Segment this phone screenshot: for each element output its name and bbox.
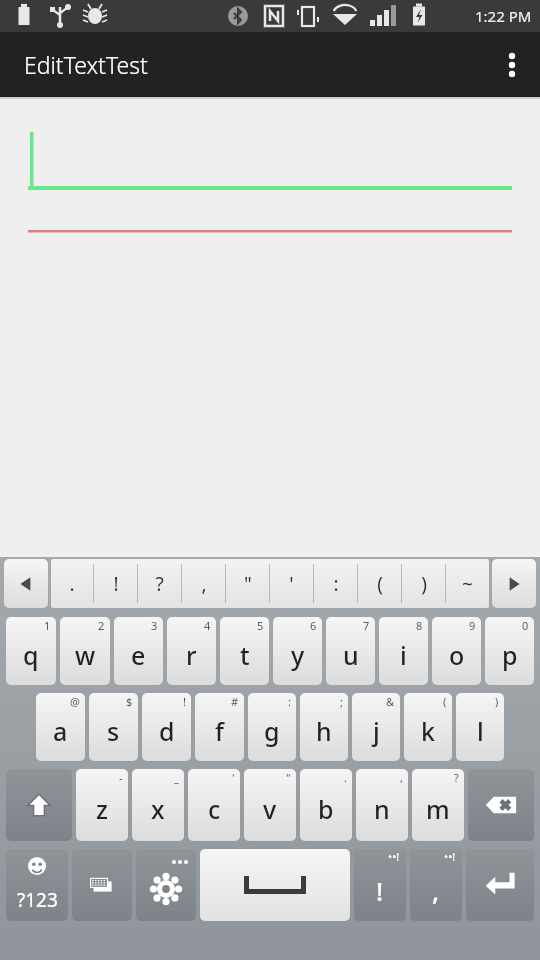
button[interactable]: 9 (432, 617, 481, 685)
staticText: 1:22 PM (475, 6, 532, 26)
staticText: y (291, 638, 305, 672)
staticText: ! (113, 571, 119, 597)
button[interactable]: 8 (379, 617, 428, 685)
staticText: e (131, 638, 146, 672)
staticText: l (477, 714, 484, 748)
staticText: ; (340, 694, 343, 709)
button[interactable]: ) (456, 693, 504, 761)
button[interactable]: 5 (220, 617, 269, 685)
staticText: , (432, 873, 440, 908)
button[interactable]: : (248, 693, 296, 761)
staticText: : (333, 571, 339, 597)
staticText: ! (183, 694, 186, 709)
button[interactable]: 6 (273, 617, 322, 685)
staticText: t (240, 638, 250, 672)
staticText: - (119, 770, 123, 785)
button[interactable]: Next (492, 559, 536, 608)
button[interactable]: Switch keyboard (72, 849, 132, 921)
button[interactable]: # (195, 693, 244, 761)
staticText: ) (421, 571, 427, 597)
button[interactable]: Space (200, 849, 350, 921)
staticText: 7 (363, 618, 370, 633)
staticText: o (449, 638, 465, 672)
staticText: ( (443, 694, 447, 709)
staticText: _ (174, 770, 179, 785)
staticText: 6 (310, 618, 317, 633)
staticText: . (344, 770, 347, 785)
staticText: p (502, 638, 518, 672)
staticText: ! (376, 873, 384, 908)
button[interactable]: 7 (326, 617, 375, 685)
button[interactable]: More options (484, 32, 540, 97)
button[interactable]: _ (132, 769, 184, 841)
button[interactable]: - (76, 769, 128, 841)
button[interactable]: 4 (167, 617, 216, 685)
button[interactable]: , (182, 559, 225, 608)
staticText: @ (70, 694, 80, 709)
button[interactable]: @ (36, 693, 85, 761)
staticText: ? (155, 571, 164, 597)
button[interactable]: " (244, 769, 296, 841)
staticText: c (208, 792, 221, 826)
button[interactable]: 2 (60, 617, 110, 685)
button[interactable]: 3 (114, 617, 163, 685)
button[interactable]: ? (138, 559, 181, 608)
button[interactable]: 1 (6, 617, 56, 685)
button[interactable]: Previous (4, 559, 48, 608)
staticText: r (186, 638, 197, 672)
button[interactable]: ? (412, 769, 464, 841)
staticText: n (374, 792, 390, 826)
staticText: x (151, 792, 165, 826)
button[interactable]: Backspace (468, 769, 534, 841)
staticText: 8 (416, 618, 423, 633)
button[interactable]: ' (188, 769, 240, 841)
button[interactable]: . (300, 769, 352, 841)
button[interactable]: . (51, 559, 93, 608)
staticText: 1 (44, 618, 51, 633)
staticText: z (96, 792, 108, 826)
staticText: b (318, 792, 334, 826)
staticText: ' (289, 571, 294, 597)
button[interactable]: ' (270, 559, 313, 608)
staticText: ( (377, 571, 383, 597)
button[interactable]: Enter (466, 849, 534, 921)
button[interactable]: ! (94, 559, 137, 608)
staticText: s (107, 714, 120, 748)
button[interactable]: ) (402, 559, 445, 608)
staticText: : (288, 694, 291, 709)
button[interactable]: Shift (6, 769, 72, 841)
button[interactable]: : (314, 559, 357, 608)
button[interactable]: Settings (136, 849, 196, 921)
button[interactable]: $ (89, 693, 138, 761)
staticText: v (263, 792, 277, 826)
button[interactable]: & (352, 693, 400, 761)
staticText: q (23, 638, 39, 672)
staticText: f (215, 714, 224, 748)
button[interactable]: Symbols (6, 849, 68, 921)
button[interactable]: ( (404, 693, 452, 761)
staticText: , (201, 571, 207, 597)
staticText: ••! (444, 849, 456, 864)
staticText: m (426, 792, 450, 826)
staticText: ••! (388, 849, 400, 864)
staticText: 3 (151, 618, 158, 633)
staticText: " (286, 770, 291, 785)
staticText: 4 (204, 618, 211, 633)
button[interactable]: ( (358, 559, 401, 608)
staticText: 5 (257, 618, 264, 633)
button[interactable]: ; (300, 693, 348, 761)
staticText: $ (126, 694, 133, 709)
staticText: a (53, 714, 68, 748)
staticText: . (69, 571, 75, 597)
button[interactable]: 0 (485, 617, 534, 685)
button[interactable]: ••! (410, 849, 462, 921)
staticText: 0 (522, 618, 529, 633)
button[interactable]: ~ (446, 559, 489, 608)
button[interactable]: ••! (354, 849, 406, 921)
staticText: # (231, 694, 239, 709)
staticText: k (421, 714, 435, 748)
button[interactable]: " (226, 559, 269, 608)
staticText: & (386, 694, 395, 709)
button[interactable]: , (356, 769, 408, 841)
button[interactable]: ! (142, 693, 191, 761)
